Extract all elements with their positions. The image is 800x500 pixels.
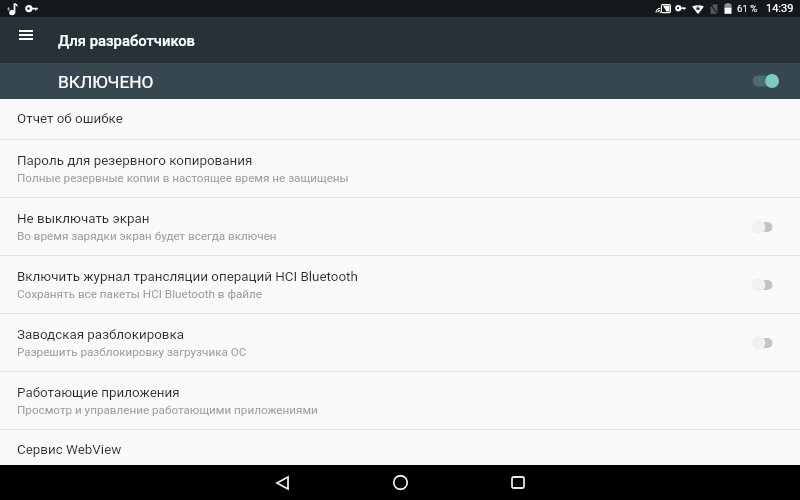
staticText: Отчет об ошибке <box>17 111 123 127</box>
staticText: Для разработчиков <box>58 32 196 49</box>
staticText: Во время зарядки экран будет всегда вклю… <box>17 229 277 243</box>
button[interactable]: Пароль для резервного копирования <box>0 140 800 197</box>
button[interactable]: Back <box>223 465 341 500</box>
other: Developer options on <box>752 73 779 89</box>
other: Toggle Заводская разблокировка <box>752 335 773 351</box>
staticText: Полные резервные копии в настоящее время… <box>17 171 349 185</box>
other: Toggle Не выключать экран <box>752 219 773 235</box>
staticText: Просмотр и управление работающими прилож… <box>17 403 318 417</box>
staticText: Сохранять все пакеты HCI Bluetooth в фай… <box>17 287 262 301</box>
staticText: Заводская разблокировка <box>17 327 185 343</box>
button[interactable]: Включить журнал трансляции операций HCI … <box>0 256 800 313</box>
button[interactable]: Отчет об ошибке <box>0 99 800 139</box>
button[interactable]: Home <box>341 465 459 500</box>
staticText: Пароль для резервного копирования <box>17 153 253 169</box>
button[interactable]: Open navigation menu <box>4 15 48 55</box>
button[interactable]: Сервис WebView <box>0 430 800 465</box>
other: Toggle Включить журнал трансляции операц… <box>752 277 773 293</box>
staticText: Работающие приложения <box>17 385 180 401</box>
staticText: Включить журнал трансляции операций HCI … <box>17 269 358 285</box>
button[interactable]: Не выключать экран <box>0 198 800 255</box>
staticText: ВКЛЮЧЕНО <box>58 72 154 92</box>
staticText: Разрешить разблокировку загрузчика ОС <box>17 345 247 359</box>
button[interactable]: Recent apps <box>459 465 577 500</box>
button[interactable]: ВКЛЮЧЕНО <box>0 63 800 99</box>
button[interactable]: Заводская разблокировка <box>0 314 800 371</box>
staticText: 61 % <box>737 3 758 14</box>
button[interactable]: Работающие приложения <box>0 372 800 429</box>
staticText: Сервис WebView <box>17 442 122 458</box>
staticText: 14:39 <box>766 2 794 15</box>
staticText: Не выключать экран <box>17 211 150 227</box>
